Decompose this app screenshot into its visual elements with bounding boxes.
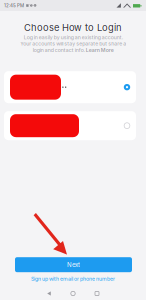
button[interactable]: Home <box>61 288 85 299</box>
button[interactable] <box>4 71 136 103</box>
button[interactable]: Next <box>15 257 132 272</box>
staticText: Choose How to Login <box>24 22 122 33</box>
button[interactable]: Back <box>37 288 61 299</box>
button[interactable]: Sign up with email or phone number <box>31 272 115 287</box>
staticText: Next <box>67 261 80 268</box>
staticText: 12:45 PM <box>4 3 24 8</box>
button[interactable] <box>4 111 136 140</box>
staticText: Log in easily by using an existing accou… <box>20 34 126 53</box>
button[interactable]: Recent apps <box>85 288 109 299</box>
staticText: Sign up with email or phone number <box>31 276 115 282</box>
